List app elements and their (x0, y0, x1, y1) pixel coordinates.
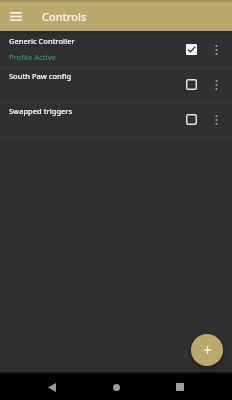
button[interactable]: Swapped triggers (0, 103, 232, 138)
button[interactable]: Recent apps (164, 374, 196, 400)
button[interactable]: Open navigation drawer (0, 1, 31, 31)
staticText: Swapped triggers (9, 106, 73, 116)
button[interactable]: Unchecked (177, 102, 206, 137)
button[interactable]: Back (36, 374, 68, 400)
staticText: Profile Active (9, 52, 56, 62)
button[interactable]: South Paw config (0, 68, 232, 103)
staticText: Generic Controller (9, 36, 75, 46)
button[interactable]: More options (206, 102, 227, 137)
button[interactable]: Unchecked (177, 67, 206, 102)
button[interactable]: Add (191, 334, 223, 366)
button[interactable]: More options (206, 32, 227, 67)
button[interactable]: Generic Controller (0, 33, 232, 68)
button[interactable]: Home (100, 374, 132, 400)
staticText: Controls (42, 9, 87, 24)
staticText: South Paw config (9, 71, 72, 81)
button[interactable]: More options (206, 67, 227, 102)
button[interactable]: Checked (177, 32, 206, 67)
